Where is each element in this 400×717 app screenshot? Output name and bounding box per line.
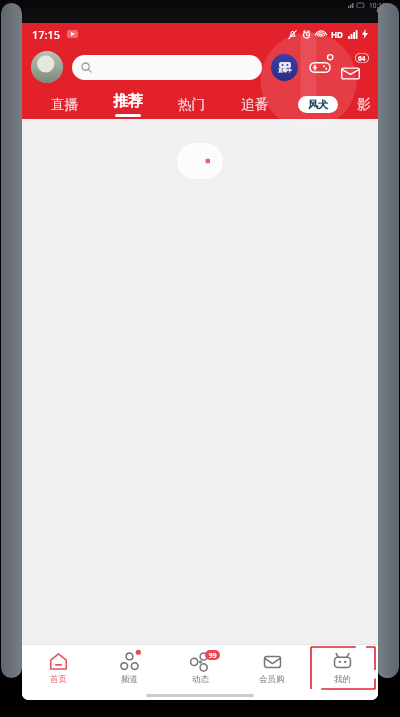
staticText: 动态 — [192, 674, 209, 685]
staticText: 64 — [358, 54, 366, 63]
button[interactable] — [72, 55, 262, 80]
button[interactable]: 推荐 — [96, 89, 160, 119]
button[interactable]: 我的 — [307, 645, 378, 691]
staticText: 首页 — [50, 674, 67, 685]
button[interactable]: 直播 — [32, 89, 96, 119]
staticText: 会员购 — [259, 674, 285, 685]
button[interactable]: 风犬 — [286, 89, 349, 119]
staticText: 99 — [209, 651, 217, 660]
button[interactable]: 频道 — [94, 645, 165, 691]
button[interactable]: Messages, 64 unread — [341, 53, 369, 81]
staticText: 10:10 — [369, 1, 386, 10]
button[interactable]: Profile avatar — [31, 51, 63, 83]
staticText: 频道 — [121, 674, 138, 685]
staticText: 影 — [357, 96, 371, 113]
button[interactable]: 热门 — [160, 89, 223, 119]
staticText: 17:15 — [32, 27, 61, 42]
button[interactable]: 会员购 — [236, 645, 307, 691]
staticText: 直播 — [51, 96, 78, 113]
button[interactable]: 首页 — [22, 645, 94, 691]
staticText: HD — [331, 29, 343, 40]
staticText: 热门 — [178, 96, 205, 113]
staticText: 推荐 — [113, 92, 143, 111]
button[interactable]: 追番 — [223, 89, 286, 119]
button[interactable]: 影 — [349, 89, 378, 119]
staticText: 追番 — [241, 96, 268, 113]
button[interactable]: Live now — [271, 54, 298, 81]
button[interactable]: 99 — [165, 645, 236, 691]
staticText: 直播中 — [278, 68, 292, 74]
button[interactable]: Games — [307, 54, 333, 80]
staticText: 我的 — [334, 674, 351, 685]
staticText: 风犬 — [308, 98, 328, 111]
